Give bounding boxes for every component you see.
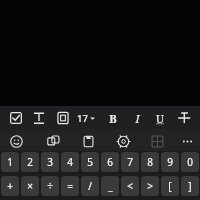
button[interactable]: < — [121, 176, 139, 196]
button[interactable]: More options — [177, 131, 197, 151]
button[interactable]: Checklist — [5, 107, 27, 129]
staticText: 8 — [147, 155, 153, 169]
button[interactable]: ÷ — [41, 176, 59, 196]
staticText: / — [88, 179, 92, 193]
button[interactable]: [ — [161, 176, 179, 196]
staticText: + — [7, 179, 13, 193]
staticText: 3 — [47, 155, 53, 169]
button[interactable]: 3 — [41, 152, 59, 172]
staticText: 2 — [27, 155, 33, 169]
staticText: 0 — [187, 155, 193, 169]
staticText: B — [109, 111, 117, 126]
button[interactable]: + — [1, 176, 19, 196]
staticText: < — [127, 179, 133, 193]
staticText: ] — [188, 179, 192, 193]
button[interactable]: Clipboard — [78, 131, 98, 151]
button[interactable]: Emoji — [6, 131, 26, 151]
button[interactable]: 17 — [73, 107, 99, 129]
button[interactable]: Settings — [113, 131, 133, 151]
staticText: U — [156, 111, 164, 126]
button[interactable]: ] — [181, 176, 199, 196]
button[interactable]: 7 — [121, 152, 139, 172]
staticText: 6 — [107, 155, 113, 169]
button[interactable]: _ — [101, 176, 119, 196]
button[interactable]: Stickers — [43, 131, 63, 151]
button[interactable]: × — [21, 176, 39, 196]
button[interactable]: 4 — [61, 152, 79, 172]
button[interactable]: 0 — [181, 152, 199, 172]
button[interactable]: Emoji kitchen — [147, 131, 167, 151]
button[interactable]: 1 — [1, 152, 19, 172]
button[interactable]: / — [81, 176, 99, 196]
staticText: 7 — [127, 155, 133, 169]
button[interactable]: Text formatting — [28, 107, 50, 129]
staticText: [ — [168, 179, 172, 193]
button[interactable]: Strikethrough — [173, 107, 195, 129]
staticText: ÷ — [47, 179, 53, 193]
staticText: > — [147, 179, 153, 193]
button[interactable]: 8 — [141, 152, 159, 172]
staticText: 4 — [67, 155, 73, 169]
button[interactable]: = — [61, 176, 79, 196]
staticText: 1 — [7, 155, 13, 169]
staticText: = — [67, 179, 73, 193]
staticText: 5 — [87, 155, 93, 169]
button[interactable]: Italic — [126, 107, 148, 129]
button[interactable]: 9 — [161, 152, 179, 172]
button[interactable]: > — [141, 176, 159, 196]
staticText: × — [27, 179, 33, 193]
button[interactable]: Paste — [52, 107, 74, 129]
staticText: _ — [108, 179, 113, 193]
button[interactable]: 5 — [81, 152, 99, 172]
button[interactable]: 6 — [101, 152, 119, 172]
button[interactable]: Bold — [102, 107, 124, 129]
staticText: I — [135, 111, 140, 126]
staticText: 17 — [77, 112, 88, 125]
button[interactable]: 2 — [21, 152, 39, 172]
staticText: 9 — [167, 155, 173, 169]
button[interactable]: Underline — [149, 107, 171, 129]
